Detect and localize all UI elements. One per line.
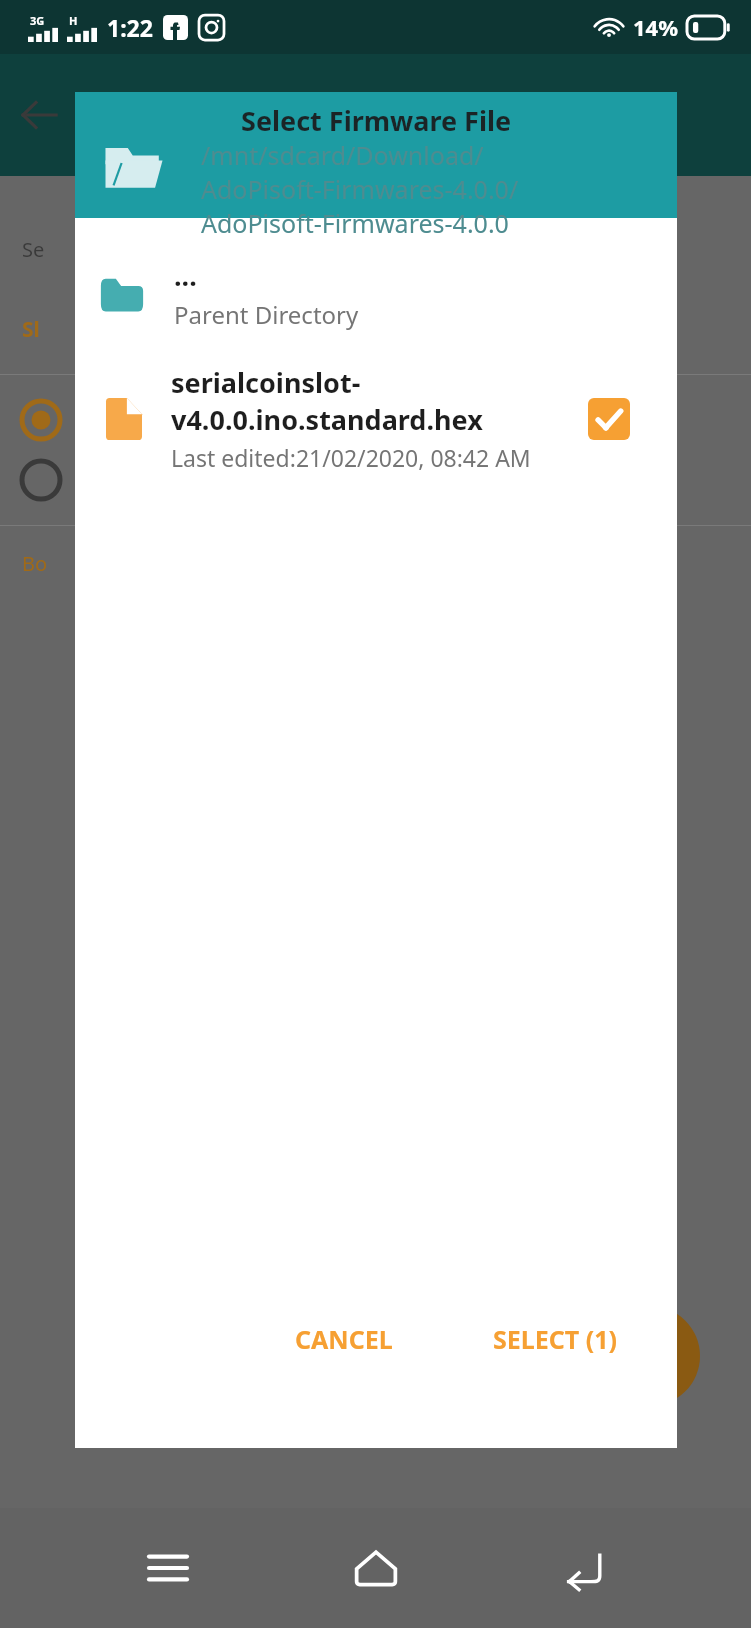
staticText: /mnt/sdcard/Download/	[201, 138, 484, 172]
button[interactable]: Selected	[587, 397, 631, 441]
staticText: SELECT (1)	[493, 1322, 617, 1356]
staticText: AdoPisoft-Firmwares-4.0.0/	[201, 172, 519, 206]
button[interactable]: ...	[75, 252, 677, 336]
button[interactable]: Back	[543, 1528, 623, 1608]
staticText: 14%	[633, 12, 679, 42]
staticText: CANCEL	[295, 1322, 393, 1356]
staticText: 3G	[30, 13, 45, 28]
button[interactable]: serialcoinslot-	[75, 358, 677, 479]
staticText: Sl	[22, 315, 40, 344]
staticText: H	[69, 13, 78, 28]
staticText: 1:22	[107, 12, 153, 43]
button[interactable]: Recents	[128, 1528, 208, 1608]
staticText: Last edited:21/02/2020, 08:42 AM	[171, 442, 531, 473]
staticText: Bo	[22, 550, 48, 577]
button[interactable]: CANCEL	[273, 1308, 415, 1370]
staticText: Se	[22, 236, 45, 263]
button[interactable]: Back	[10, 86, 68, 144]
staticText: AdoPisoft-Firmwares-4.0.0	[201, 206, 509, 240]
staticText: ...	[174, 257, 197, 294]
button[interactable]: SELECT (1)	[471, 1308, 639, 1370]
button[interactable]: Home	[336, 1528, 416, 1608]
staticText: Parent Directory	[174, 298, 359, 331]
staticText: v4.0.0.ino.standard.hex	[171, 401, 483, 438]
staticText: Select Firmware File	[241, 102, 512, 139]
staticText: serialcoinslot-	[171, 364, 361, 401]
